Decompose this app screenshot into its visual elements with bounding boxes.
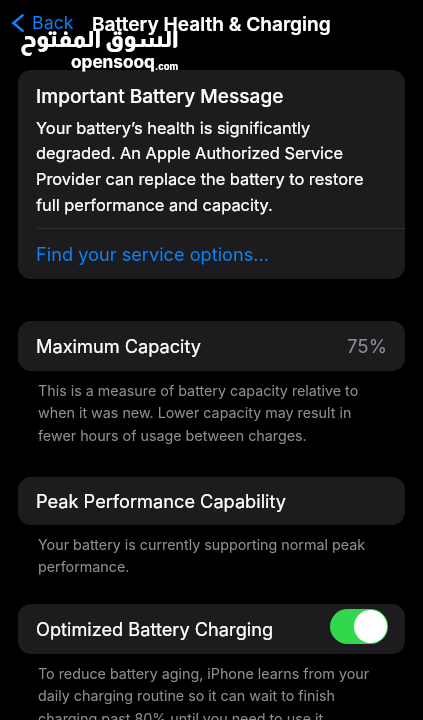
staticText: Battery Health & Charging [92, 12, 331, 35]
button[interactable]: Maximum Capacity [18, 321, 405, 371]
button[interactable]: Peak Performance Capability [18, 477, 405, 525]
staticText: .com [155, 61, 179, 72]
staticText: To reduce battery aging, iPhone learns f… [38, 665, 379, 720]
staticText: Your battery is currently supporting nor… [38, 536, 379, 576]
button[interactable]: Find your service options... [18, 229, 405, 279]
staticText: السوق المفتوح [20, 26, 179, 51]
staticText: Back [32, 12, 74, 34]
staticText: Important Battery Message [36, 84, 284, 107]
staticText: Find your service options... [36, 243, 270, 265]
staticText: This is a measure of battery capacity re… [38, 382, 379, 445]
button[interactable]: Optimized Battery Charging, on [330, 609, 388, 644]
staticText: Maximum Capacity [36, 335, 202, 357]
staticText: Peak Performance Capability [36, 490, 286, 512]
staticText: opensooq [71, 51, 155, 72]
button[interactable]: Back [6, 7, 80, 39]
staticText: 75% [347, 335, 387, 358]
staticText: Your battery’s health is significantly d… [36, 118, 377, 215]
staticText: Optimized Battery Charging [36, 618, 274, 640]
